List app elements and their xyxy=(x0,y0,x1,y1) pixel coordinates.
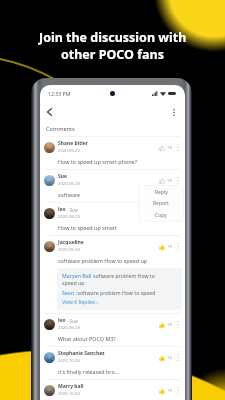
staticText: 2020-10-04 xyxy=(58,391,80,397)
button[interactable]: Marry ball xyxy=(40,380,185,400)
staticText: leo xyxy=(58,206,66,213)
button[interactable]: Like xyxy=(158,177,166,185)
button[interactable]: Reply xyxy=(139,187,183,198)
staticText: 19 xyxy=(167,145,172,151)
button[interactable]: More xyxy=(175,242,181,251)
staticText: 2020-09-29 xyxy=(58,148,80,154)
staticText: Seon xyxy=(62,289,76,296)
staticText: Stephanie Sanchez xyxy=(58,350,105,357)
button[interactable]: Like xyxy=(158,387,166,395)
button[interactable]: Like xyxy=(158,354,166,362)
button[interactable]: Sue xyxy=(40,170,185,203)
button[interactable]: Like xyxy=(158,321,166,329)
button[interactable]: Back xyxy=(42,105,56,119)
button[interactable]: Shane bitler xyxy=(40,137,185,170)
staticText: 19 xyxy=(167,322,172,328)
staticText: View 6 Replies › xyxy=(62,299,99,306)
staticText: Maryen Ball xyxy=(62,272,93,279)
staticText: What about POCO M3? xyxy=(58,335,116,342)
staticText: it's finally released bro... xyxy=(58,368,119,375)
button[interactable]: Jacqueline xyxy=(40,236,185,314)
staticText: Report xyxy=(153,200,169,207)
button[interactable]: More xyxy=(175,386,181,395)
staticText: 19 xyxy=(167,355,172,361)
staticText: How to speed up smart phone? xyxy=(58,158,137,165)
staticText: 19 xyxy=(167,244,172,250)
staticText: 12:33 PM xyxy=(48,90,71,97)
button[interactable]: leo xyxy=(40,203,185,236)
staticText: Shane bitler xyxy=(58,140,89,147)
button[interactable]: More xyxy=(175,320,181,329)
button[interactable]: More xyxy=(175,143,181,152)
button[interactable]: Stephanie Sanchez xyxy=(40,347,185,380)
staticText: 2020-10-04 xyxy=(58,358,80,364)
button[interactable]: leo xyxy=(40,314,185,347)
staticText: :software problem How to speed xyxy=(76,289,156,296)
staticText: other POCO fans xyxy=(61,46,164,63)
staticText: 19 xyxy=(167,388,172,394)
staticText: Comments xyxy=(46,125,75,133)
staticText: › Sue xyxy=(66,318,78,324)
staticText: 2020-09-29 xyxy=(58,247,80,253)
staticText: › Sue xyxy=(66,207,78,213)
button[interactable]: More options xyxy=(168,106,180,118)
staticText: 2020-09-29 xyxy=(58,325,80,331)
staticText: Marry ball xyxy=(58,383,84,390)
staticText: speed up xyxy=(62,279,85,286)
staticText: How to speed up smart xyxy=(58,224,117,231)
button[interactable]: Copy xyxy=(139,210,183,221)
staticText: 2020-09-29 xyxy=(58,181,80,187)
staticText: Jacqueline xyxy=(58,239,84,246)
button[interactable]: Like xyxy=(158,243,166,251)
staticText: Reply xyxy=(155,189,168,196)
staticText: 19 xyxy=(167,178,172,184)
staticText: software problem How to xyxy=(93,272,155,279)
button[interactable]: More xyxy=(175,176,181,185)
staticText: Join the discussion with xyxy=(39,29,187,46)
staticText: Sue xyxy=(58,173,67,180)
button[interactable]: Like xyxy=(158,144,166,152)
staticText: software problem How to speed up xyxy=(58,257,148,264)
staticText: software xyxy=(58,191,81,198)
button[interactable]: More xyxy=(175,353,181,362)
staticText: 2020-09-29 xyxy=(58,214,80,220)
staticText: leo xyxy=(58,317,66,324)
button[interactable]: Maryen Ball xyxy=(57,268,182,310)
button[interactable]: Like xyxy=(158,210,166,218)
button[interactable]: Report xyxy=(139,198,183,209)
staticText: Copy xyxy=(155,212,167,219)
